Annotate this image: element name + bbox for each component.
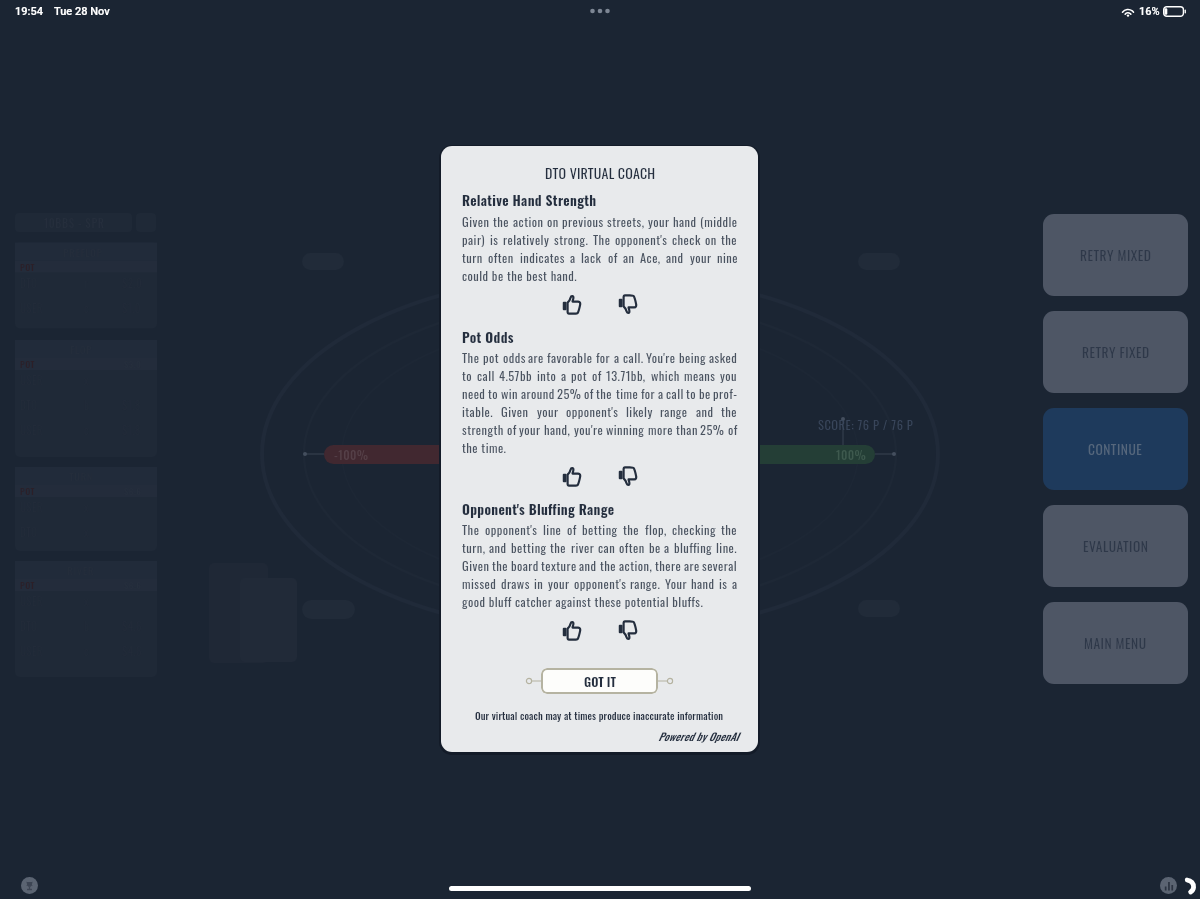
staticText: more bbox=[648, 420, 673, 438]
staticText: DTO VIRTUAL COACH bbox=[545, 162, 656, 183]
staticText: opponent's bbox=[615, 230, 668, 248]
staticText: RETRY MIXED bbox=[1080, 245, 1152, 265]
staticText: Relative Hand Strength bbox=[462, 190, 597, 210]
staticText: is bbox=[490, 230, 499, 248]
button[interactable]: MAIN MENU bbox=[1043, 602, 1188, 684]
staticText: Given bbox=[501, 402, 529, 420]
staticText: SCORE: 76 P / 76 P bbox=[818, 415, 914, 434]
staticText: You're bbox=[646, 348, 676, 366]
staticText: be bbox=[649, 538, 661, 556]
staticText: for bbox=[596, 348, 611, 366]
button[interactable]: EVALUATION bbox=[1043, 505, 1188, 587]
staticText: 19:54 bbox=[15, 5, 43, 18]
staticText: a bbox=[561, 366, 567, 384]
staticText: which bbox=[651, 366, 680, 384]
staticText: the bbox=[550, 538, 567, 556]
staticText: being bbox=[679, 348, 706, 366]
button[interactable]: RETRY FIXED bbox=[1043, 311, 1188, 393]
staticText: winning bbox=[606, 420, 645, 438]
button[interactable]: Not helpful bbox=[613, 287, 643, 317]
staticText: the bbox=[721, 402, 738, 420]
staticText: Powered by OpenAI bbox=[658, 728, 739, 744]
staticText: board bbox=[511, 556, 539, 574]
staticText: Given bbox=[462, 556, 490, 574]
staticText: you're bbox=[574, 420, 604, 438]
staticText: a bbox=[614, 348, 620, 366]
staticText: POT bbox=[20, 578, 35, 591]
button[interactable]: GOT IT bbox=[541, 668, 658, 694]
staticText: POT bbox=[20, 357, 35, 370]
staticText: can bbox=[598, 538, 616, 556]
staticText: call bbox=[477, 366, 495, 384]
staticText: the bbox=[492, 556, 509, 574]
staticText: likely bbox=[626, 402, 653, 420]
staticText: opponent's bbox=[485, 520, 538, 538]
button[interactable]: Not helpful bbox=[613, 613, 643, 643]
staticText: and bbox=[696, 402, 714, 420]
staticText: 16% bbox=[1139, 5, 1160, 18]
staticText: strength bbox=[462, 420, 504, 438]
button[interactable]: Helpful bbox=[557, 459, 587, 489]
staticText: your bbox=[690, 248, 712, 266]
button[interactable]: RETRY MIXED bbox=[1043, 214, 1188, 296]
staticText: your bbox=[648, 212, 670, 230]
staticText: and bbox=[489, 538, 507, 556]
staticText: often bbox=[619, 538, 645, 556]
staticText: are bbox=[528, 348, 544, 366]
staticText: call bbox=[666, 384, 684, 402]
staticText: betting bbox=[511, 538, 547, 556]
button[interactable]: Statistics bbox=[1160, 877, 1177, 894]
staticText: a bbox=[658, 384, 664, 402]
staticText: into bbox=[537, 366, 557, 384]
staticText: range. bbox=[630, 574, 661, 592]
staticText: 13.71bb, bbox=[606, 366, 646, 384]
staticText: CONTINUE bbox=[1088, 439, 1143, 459]
staticText: your bbox=[548, 574, 570, 592]
staticText: river bbox=[571, 538, 595, 556]
button[interactable]: CONTINUE bbox=[1043, 408, 1188, 490]
staticText: lack bbox=[581, 248, 602, 266]
staticText: time bbox=[616, 384, 639, 402]
staticText: nine bbox=[717, 248, 738, 266]
staticText: means bbox=[684, 366, 716, 384]
staticText: your bbox=[519, 420, 541, 438]
staticText: pot bbox=[571, 366, 588, 384]
staticText: Given bbox=[462, 212, 490, 230]
button[interactable]: Helpful bbox=[557, 287, 587, 317]
staticText: for bbox=[641, 384, 656, 402]
staticText: be bbox=[699, 384, 711, 402]
staticText: texture bbox=[541, 556, 577, 574]
staticText: of bbox=[507, 420, 517, 438]
button[interactable]: Achievements bbox=[21, 877, 38, 894]
staticText: GOT IT bbox=[584, 672, 616, 691]
staticText: POT bbox=[20, 484, 35, 497]
staticText: on bbox=[705, 230, 717, 248]
staticText: of bbox=[608, 248, 618, 266]
staticText: MAIN MENU bbox=[1084, 633, 1147, 653]
staticText: check bbox=[672, 230, 701, 248]
staticText: good bluff catcher against these potenti… bbox=[462, 592, 704, 610]
staticText: the bbox=[600, 556, 617, 574]
staticText: range bbox=[660, 402, 688, 420]
staticText: The bbox=[462, 520, 480, 538]
button[interactable]: Not helpful bbox=[613, 459, 643, 489]
staticText: hand bbox=[691, 574, 715, 592]
staticText: betting bbox=[582, 520, 618, 538]
staticText: of bbox=[584, 384, 594, 402]
staticText: the bbox=[721, 520, 738, 538]
staticText: of bbox=[567, 520, 577, 538]
button[interactable]: Helpful bbox=[557, 613, 587, 643]
staticText: indicates bbox=[520, 248, 565, 266]
